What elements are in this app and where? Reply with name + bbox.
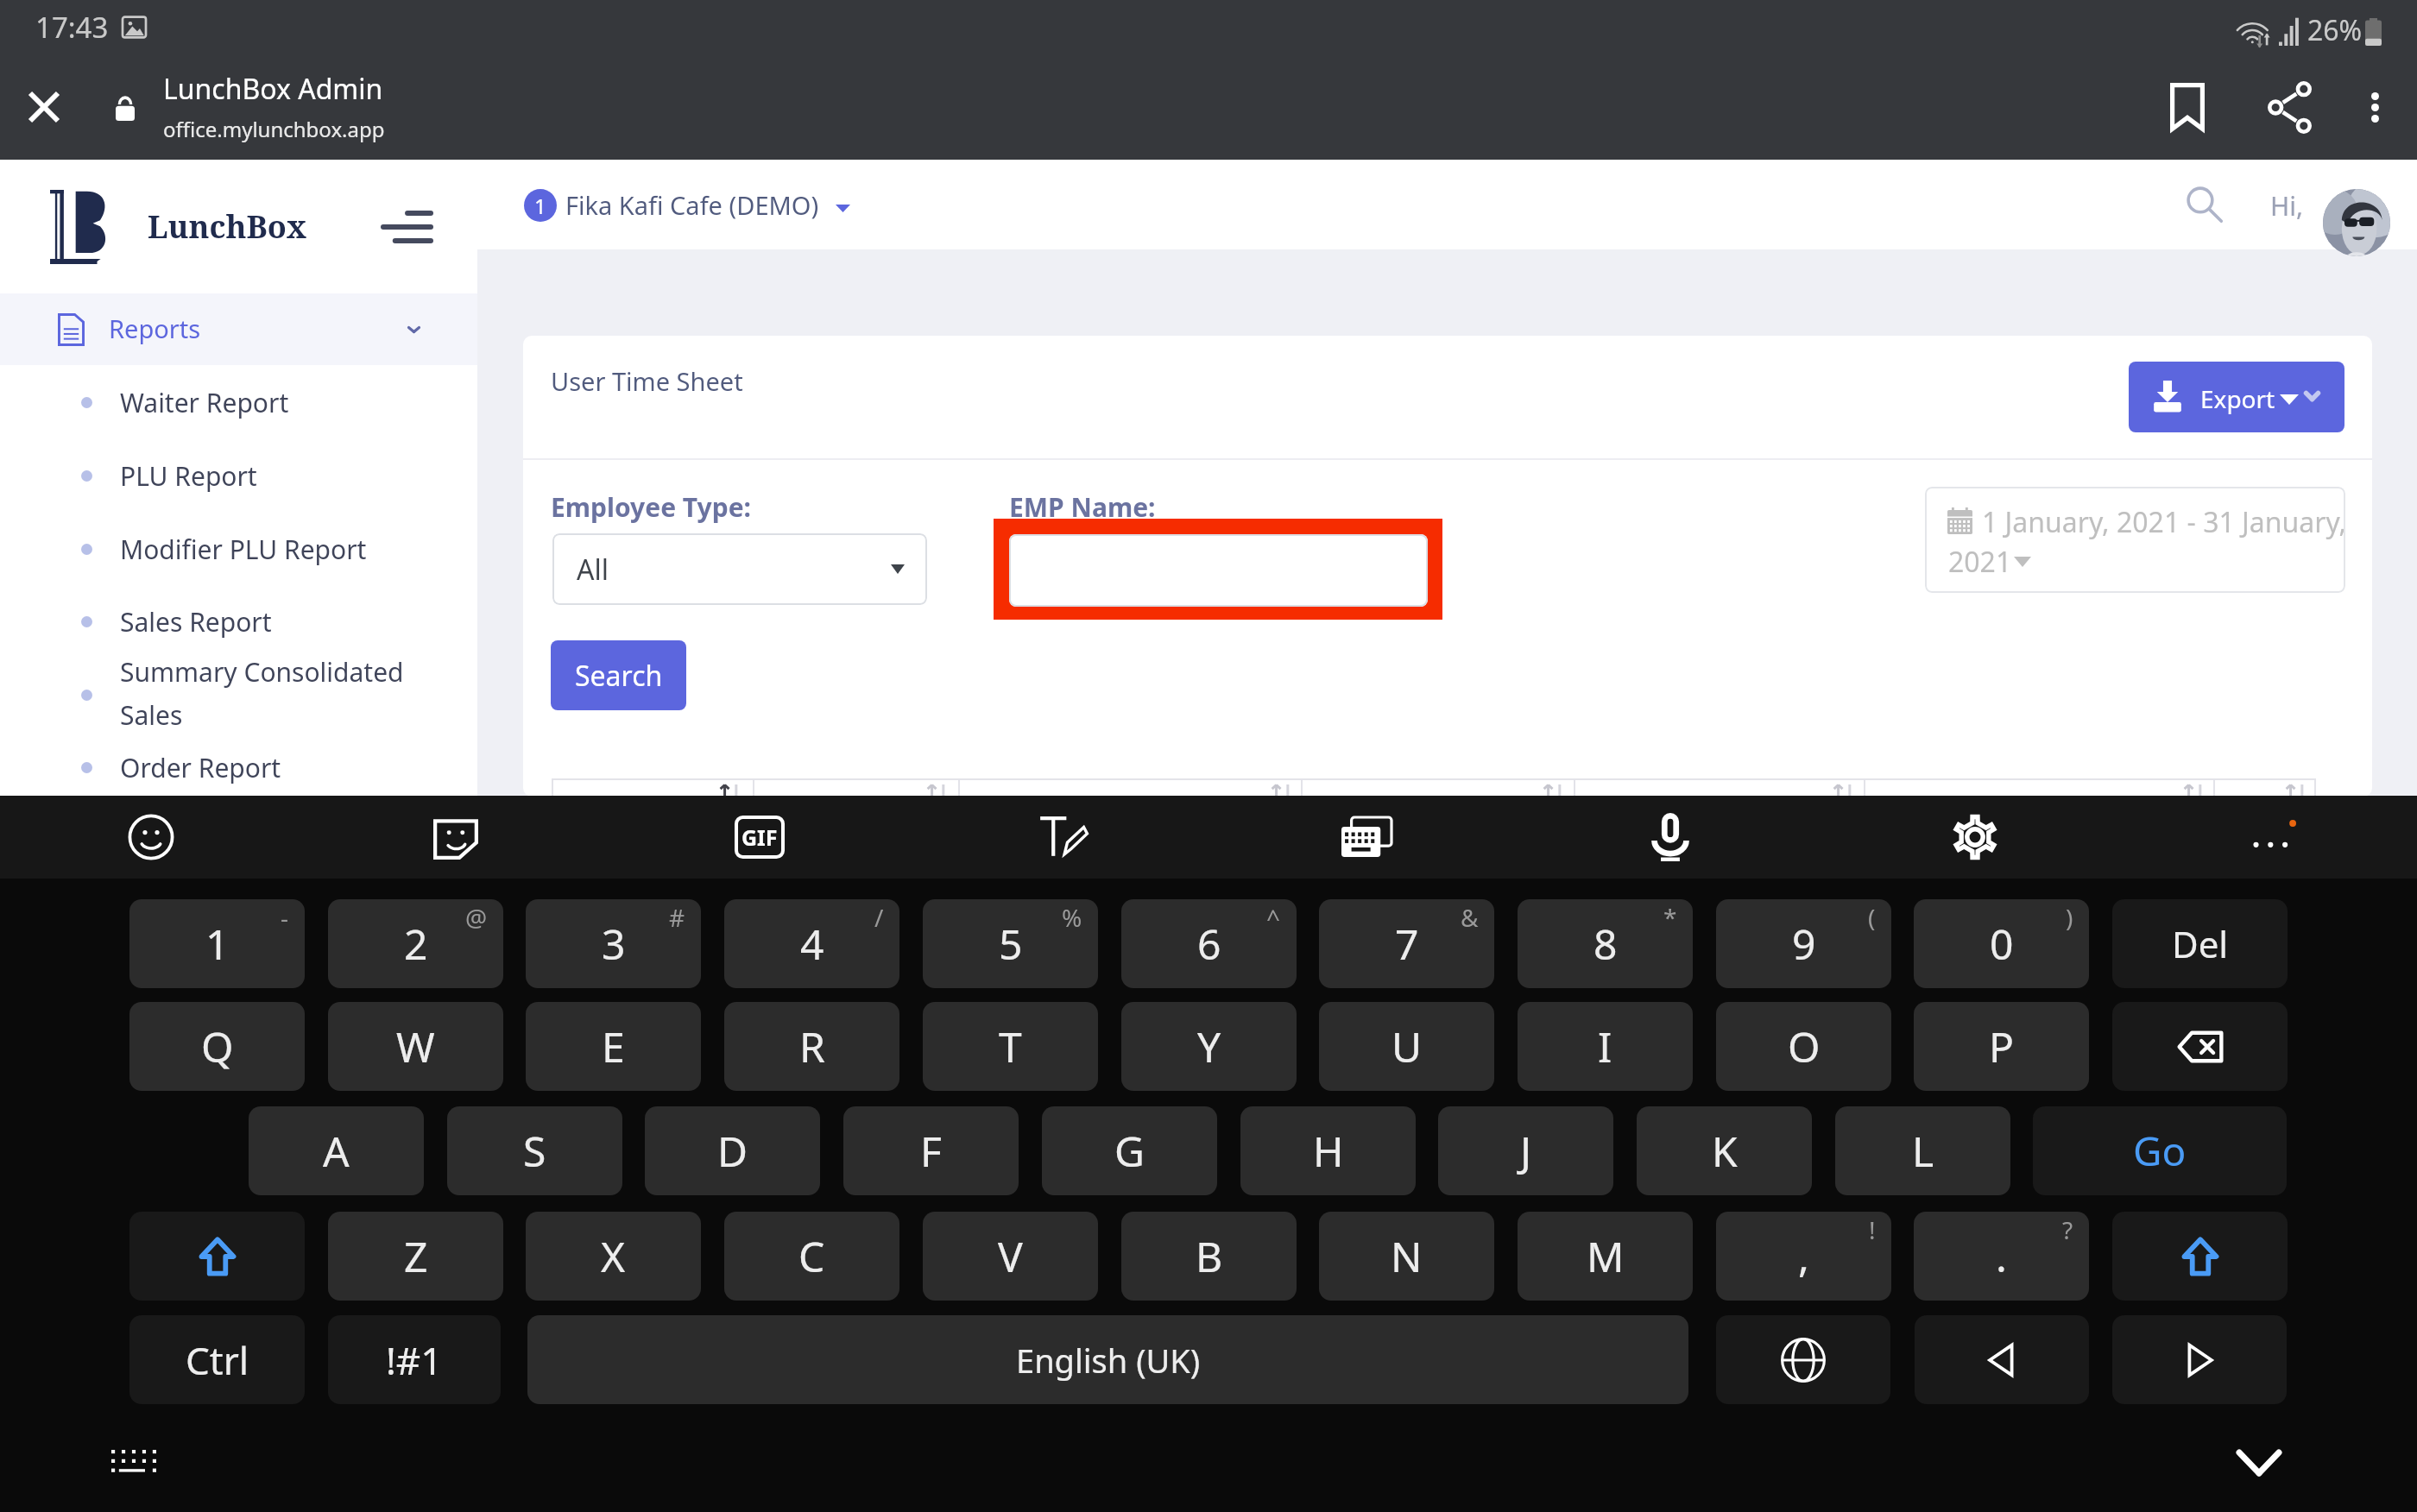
button[interactable]: Go bbox=[2033, 1106, 2287, 1195]
button[interactable]: L bbox=[1835, 1106, 2010, 1195]
button[interactable]: Change language bbox=[1716, 1315, 1890, 1404]
staticText: C bbox=[798, 1228, 825, 1284]
button[interactable]: . bbox=[1914, 1212, 2089, 1301]
button[interactable]: Summary Consolidated bbox=[0, 654, 477, 735]
button[interactable]: Z bbox=[328, 1212, 503, 1301]
button[interactable]: 4 bbox=[724, 899, 899, 988]
staticText: F bbox=[920, 1123, 942, 1179]
button[interactable]: Shift bbox=[2112, 1212, 2288, 1301]
staticText: Waiter Report bbox=[120, 385, 289, 420]
button[interactable]: 8 bbox=[1518, 899, 1693, 988]
button[interactable]: B bbox=[1121, 1212, 1297, 1301]
staticText: 2 bbox=[404, 916, 428, 972]
button[interactable]: Search bbox=[2149, 166, 2261, 243]
button[interactable]: Handwriting bbox=[1016, 796, 1111, 879]
button[interactable]: C bbox=[724, 1212, 899, 1301]
button[interactable]: K bbox=[1637, 1106, 1812, 1195]
staticText: Reports bbox=[109, 312, 201, 345]
button[interactable]: Waiter Report bbox=[0, 376, 477, 428]
button[interactable]: Backspace bbox=[2112, 1002, 2288, 1091]
button[interactable]: Bookmark bbox=[2136, 55, 2239, 159]
button[interactable]: F bbox=[843, 1106, 1019, 1195]
button[interactable]: !#1 bbox=[328, 1315, 501, 1404]
button[interactable]: Voice input bbox=[1623, 796, 1718, 879]
button[interactable]: Modifier PLU Report bbox=[0, 523, 477, 575]
staticText: 1 January, 2021 - 31 January, bbox=[1982, 503, 2345, 541]
staticText: & bbox=[1461, 901, 1479, 934]
button[interactable]: Share bbox=[2237, 55, 2341, 159]
button[interactable]: More options bbox=[2323, 55, 2417, 159]
button[interactable]: Keyboard modes bbox=[1319, 796, 1414, 879]
button[interactable]: Sales Report bbox=[0, 595, 477, 647]
button[interactable]: Y bbox=[1121, 1002, 1297, 1091]
button[interactable]: H bbox=[1240, 1106, 1416, 1195]
button[interactable]: Cursor right bbox=[2112, 1315, 2287, 1404]
staticText: I bbox=[1598, 1018, 1612, 1074]
button[interactable]: Order Report bbox=[0, 741, 477, 793]
button[interactable]: 0 bbox=[1914, 899, 2089, 988]
button[interactable]: 1 bbox=[129, 899, 305, 988]
staticText: LunchBox bbox=[148, 205, 307, 248]
button[interactable]: Search bbox=[551, 640, 686, 710]
button[interactable]: W bbox=[328, 1002, 503, 1091]
button[interactable]: I bbox=[1518, 1002, 1693, 1091]
button[interactable]: T bbox=[923, 1002, 1098, 1091]
staticText: 9 bbox=[1792, 916, 1816, 972]
button[interactable]: S bbox=[447, 1106, 622, 1195]
staticText: Modifier PLU Report bbox=[120, 532, 367, 567]
button[interactable]: P bbox=[1914, 1002, 2089, 1091]
button[interactable]: Collapse keyboard bbox=[2218, 1433, 2300, 1493]
button[interactable]: G bbox=[1042, 1106, 1217, 1195]
staticText: 7 bbox=[1395, 916, 1419, 972]
staticText: * bbox=[1663, 901, 1677, 934]
button[interactable]: English (UK) bbox=[527, 1315, 1688, 1404]
button[interactable]: GIF bbox=[712, 796, 807, 879]
button[interactable]: V bbox=[923, 1212, 1098, 1301]
button[interactable]: Export bbox=[2129, 362, 2344, 432]
button[interactable]: D bbox=[645, 1106, 820, 1195]
button[interactable]: Cursor left bbox=[1915, 1315, 2089, 1404]
staticText: ^ bbox=[1266, 901, 1281, 934]
button[interactable]: 6 bbox=[1121, 899, 1297, 988]
button[interactable]: E bbox=[526, 1002, 701, 1091]
button[interactable]: O bbox=[1716, 1002, 1891, 1091]
button[interactable]: PLU Report bbox=[0, 450, 477, 501]
button[interactable]: Hide keyboard bbox=[93, 1433, 174, 1493]
button[interactable]: Stickers bbox=[408, 796, 503, 879]
button[interactable]: Shift bbox=[129, 1212, 305, 1301]
button[interactable]: 3 bbox=[526, 899, 701, 988]
staticText: G bbox=[1114, 1123, 1145, 1179]
button[interactable]: 5 bbox=[923, 899, 1098, 988]
button[interactable]: 1 bbox=[524, 188, 850, 222]
staticText: Z bbox=[404, 1228, 428, 1284]
button[interactable]: Q bbox=[129, 1002, 305, 1091]
button[interactable]: Profile bbox=[2323, 189, 2390, 256]
button[interactable]: 7 bbox=[1319, 899, 1494, 988]
button[interactable]: Emoji bbox=[104, 796, 199, 879]
button[interactable]: Del bbox=[2112, 899, 2288, 988]
staticText: All bbox=[577, 551, 609, 589]
staticText: Del bbox=[2172, 919, 2229, 968]
button[interactable]: Menu bbox=[359, 180, 454, 274]
button[interactable]: Ctrl bbox=[129, 1315, 305, 1404]
staticText: Sales bbox=[120, 697, 183, 733]
staticText: R bbox=[799, 1018, 825, 1074]
button[interactable]: X bbox=[526, 1212, 701, 1301]
button[interactable]: J bbox=[1438, 1106, 1613, 1195]
button[interactable]: 2 bbox=[328, 899, 503, 988]
button[interactable]: A bbox=[249, 1106, 424, 1195]
button[interactable]: Reports bbox=[0, 293, 477, 365]
button[interactable]: N bbox=[1319, 1212, 1494, 1301]
button[interactable]: Close bbox=[3, 66, 85, 148]
button[interactable]: More bbox=[2225, 796, 2319, 879]
button[interactable] bbox=[1009, 534, 1428, 607]
button[interactable]: U bbox=[1319, 1002, 1494, 1091]
button[interactable]: Settings bbox=[1928, 796, 2023, 879]
button[interactable]: 1 January, 2021 - 31 January, bbox=[1925, 487, 2345, 593]
staticText: 8 bbox=[1593, 916, 1618, 972]
button[interactable]: All bbox=[552, 533, 927, 605]
button[interactable]: M bbox=[1518, 1212, 1693, 1301]
button[interactable]: R bbox=[724, 1002, 899, 1091]
button[interactable]: , bbox=[1716, 1212, 1891, 1301]
button[interactable]: 9 bbox=[1716, 899, 1891, 988]
